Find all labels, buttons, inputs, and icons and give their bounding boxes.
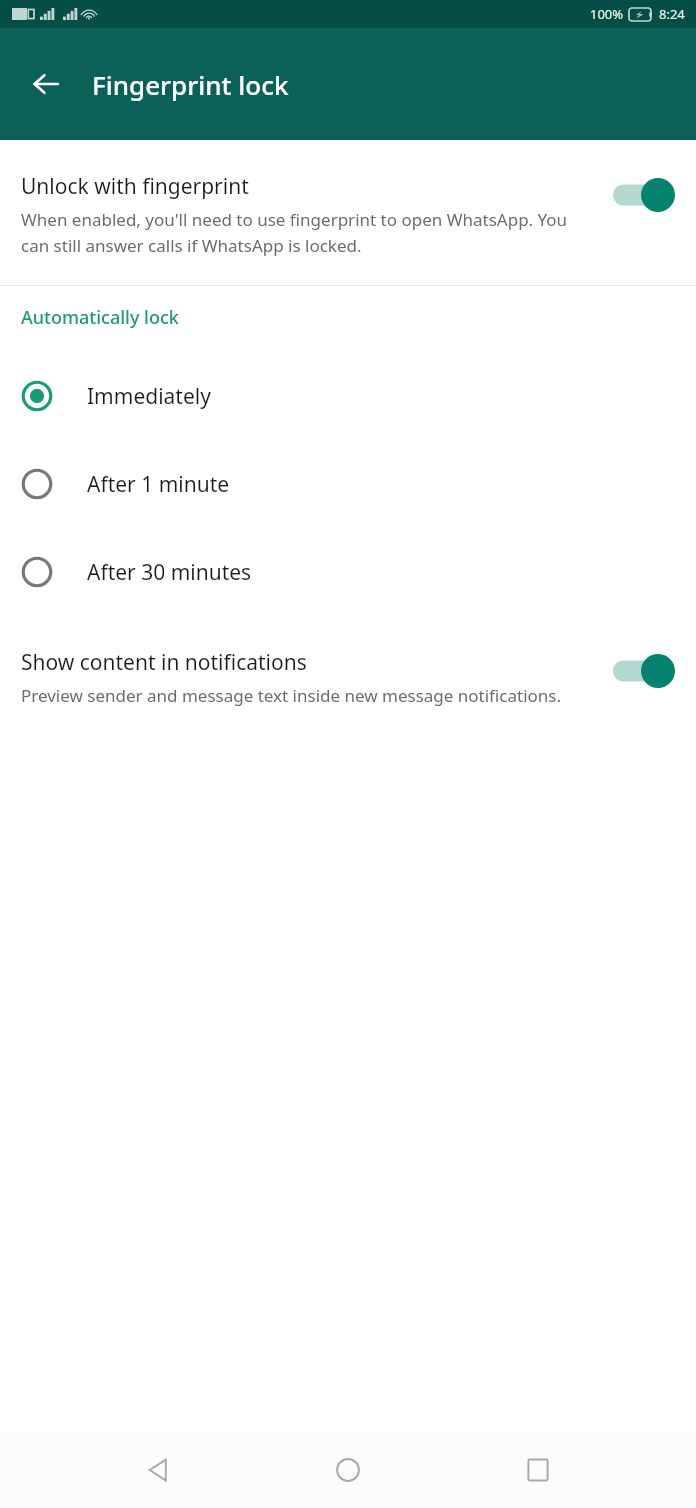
button[interactable]: Toggle bbox=[613, 654, 675, 688]
button[interactable]: Back bbox=[126, 1438, 190, 1502]
staticText: Immediately bbox=[87, 382, 211, 411]
staticText: Fingerprint lock bbox=[92, 67, 289, 102]
button[interactable]: Back bbox=[18, 56, 74, 112]
button[interactable]: After 30 minutes bbox=[0, 528, 696, 616]
staticText: Show content in notifications bbox=[21, 648, 307, 677]
staticText: Unlock with fingerprint bbox=[21, 172, 249, 201]
staticText: Preview sender and message text inside n… bbox=[21, 684, 562, 707]
button[interactable]: Home bbox=[316, 1438, 380, 1502]
button[interactable]: Unlock with fingerprint bbox=[0, 166, 696, 263]
staticText: After 30 minutes bbox=[87, 558, 252, 587]
staticText: Automatically lock bbox=[21, 305, 179, 330]
staticText: When enabled, you'll need to use fingerp… bbox=[21, 208, 599, 257]
staticText: After 1 minute bbox=[87, 470, 230, 499]
button[interactable]: Immediately bbox=[0, 352, 696, 440]
button[interactable]: Toggle bbox=[613, 178, 675, 212]
button[interactable]: Recent apps bbox=[506, 1438, 570, 1502]
staticText: 8:24 bbox=[659, 5, 685, 23]
button[interactable]: After 1 minute bbox=[0, 440, 696, 528]
staticText: 100% bbox=[590, 5, 624, 23]
button[interactable]: Show content in notifications bbox=[0, 642, 696, 713]
